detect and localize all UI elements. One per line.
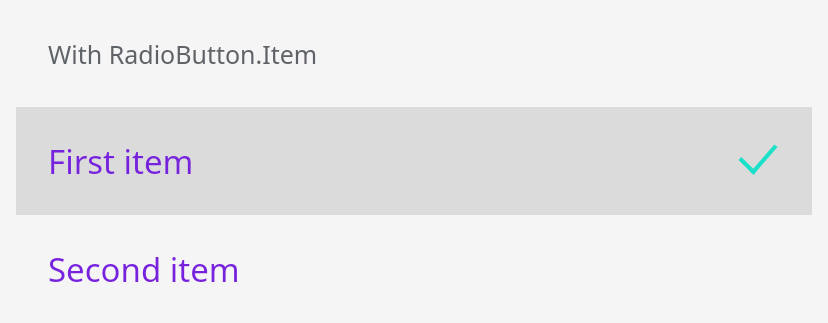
staticText: First item <box>48 139 194 184</box>
button[interactable]: First item <box>16 107 812 215</box>
staticText: With RadioButton.Item <box>48 37 318 71</box>
other: Selected <box>740 143 776 179</box>
button[interactable]: Second item <box>0 215 828 323</box>
staticText: Second item <box>48 247 240 292</box>
